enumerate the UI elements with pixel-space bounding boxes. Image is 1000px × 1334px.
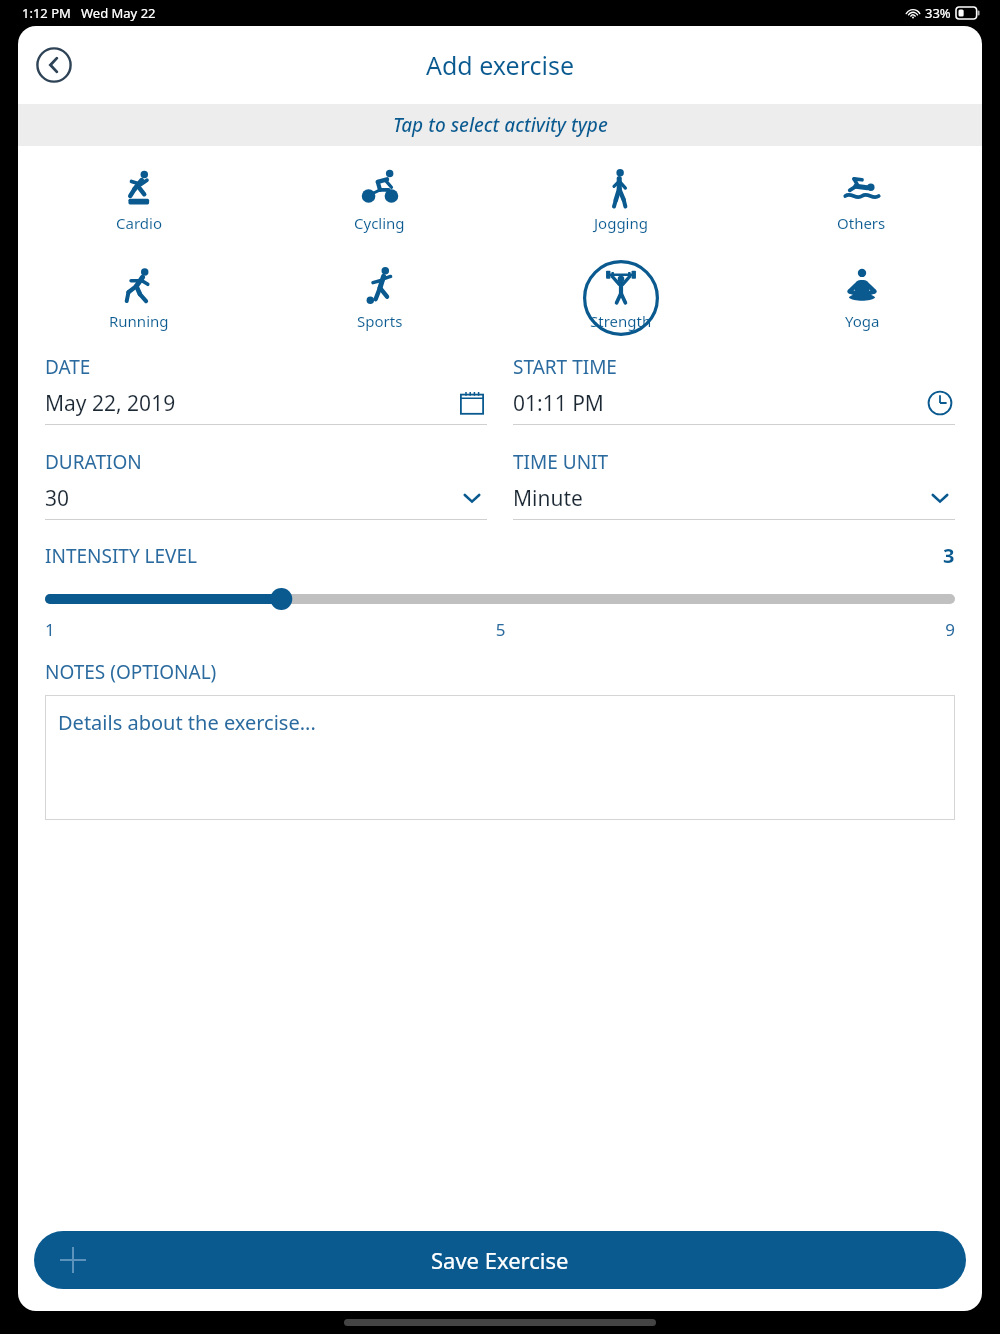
button[interactable]: Others xyxy=(741,162,982,238)
staticText: Wed May 22 xyxy=(81,4,156,22)
button[interactable]: Details about the exercise... xyxy=(45,695,955,820)
staticText: DATE xyxy=(45,354,91,380)
staticText: 01:11 PM xyxy=(513,389,925,418)
staticText: Strength xyxy=(590,311,652,331)
button[interactable]: Strength xyxy=(500,260,741,336)
staticText: Cycling xyxy=(354,213,405,233)
staticText: Tap to select activity type xyxy=(393,112,608,138)
button[interactable]: TIME UNIT xyxy=(513,449,955,520)
staticText: TIME UNIT xyxy=(513,449,609,475)
staticText: NOTES (OPTIONAL) xyxy=(45,659,217,685)
staticText: Yoga xyxy=(845,311,880,331)
staticText: INTENSITY LEVEL xyxy=(45,543,943,569)
button[interactable]: Running xyxy=(18,260,259,336)
staticText: Cardio xyxy=(116,213,162,233)
button[interactable]: Save Exercise xyxy=(34,1231,966,1289)
staticText: Add exercise xyxy=(426,48,575,82)
staticText: Jogging xyxy=(594,213,648,233)
staticText: May 22, 2019 xyxy=(45,389,457,418)
staticText: 9 xyxy=(652,618,955,641)
staticText: DURATION xyxy=(45,449,142,475)
staticText: 30 xyxy=(45,484,457,513)
staticText: Sports xyxy=(357,311,403,331)
staticText: 1:12 PM xyxy=(22,4,71,22)
button[interactable]: Cardio xyxy=(18,162,259,238)
button[interactable]: Cycling xyxy=(259,162,500,238)
staticText: 3 xyxy=(943,542,955,569)
staticText: START TIME xyxy=(513,354,617,380)
button[interactable]: DURATION xyxy=(45,449,487,520)
staticText: Others xyxy=(837,213,886,233)
button[interactable]: Back xyxy=(28,39,80,91)
staticText: Save Exercise xyxy=(431,1245,569,1275)
staticText: 33% xyxy=(925,4,951,22)
button[interactable]: START TIME xyxy=(513,354,955,425)
button[interactable]: Intensity slider xyxy=(45,586,955,612)
staticText: Running xyxy=(109,311,169,331)
staticText: 5 xyxy=(349,618,652,641)
button[interactable]: DATE xyxy=(45,354,487,425)
button[interactable]: Sports xyxy=(259,260,500,336)
staticText: Minute xyxy=(513,484,925,513)
staticText: Details about the exercise... xyxy=(58,709,316,736)
button[interactable]: Jogging xyxy=(500,162,741,238)
staticText: 1 xyxy=(45,618,349,641)
button[interactable]: Yoga xyxy=(741,260,982,336)
